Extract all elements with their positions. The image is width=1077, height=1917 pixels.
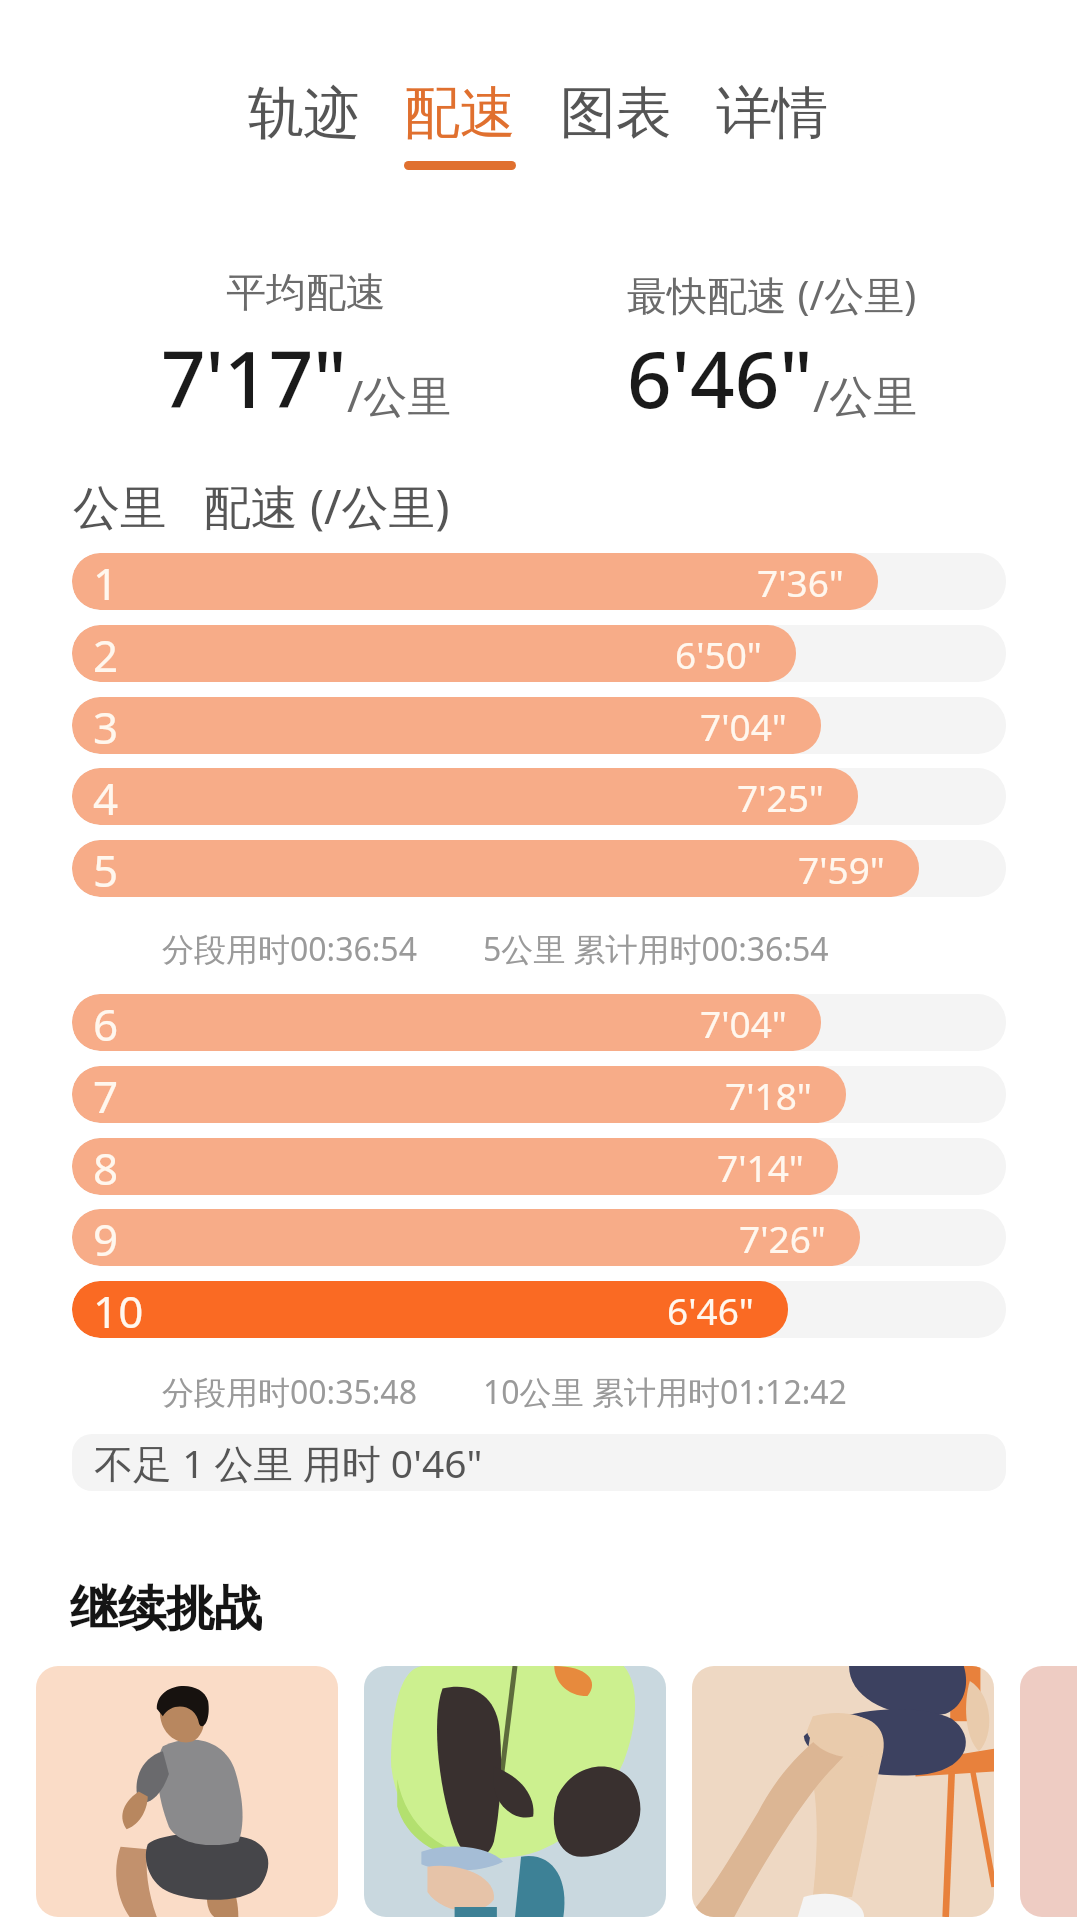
staticText: 3 bbox=[93, 697, 119, 754]
staticText: 7'04" bbox=[700, 998, 787, 1048]
staticText: 6'46" bbox=[627, 325, 813, 431]
button[interactable]: 图表 bbox=[538, 78, 694, 161]
staticText: 7'14" bbox=[717, 1142, 804, 1192]
staticText: 2 bbox=[93, 625, 119, 682]
staticText: 5公里 累计用时00:36:54 bbox=[483, 927, 829, 971]
button[interactable]: 10 bbox=[72, 1281, 1006, 1338]
staticText: 10公里 累计用时01:12:42 bbox=[483, 1370, 847, 1414]
staticText: /公里 bbox=[347, 365, 452, 425]
button[interactable]: 拉伸训练 bbox=[364, 1666, 666, 1917]
staticText: 公里 配速 (/公里) bbox=[73, 474, 450, 538]
button[interactable]: 5 bbox=[72, 840, 1006, 897]
staticText: 6'46" bbox=[667, 1285, 754, 1335]
staticText: 6'50" bbox=[675, 629, 762, 679]
staticText: 6 bbox=[93, 994, 119, 1051]
staticText: 7 bbox=[93, 1066, 119, 1123]
staticText: 轨迹 bbox=[248, 78, 360, 149]
button[interactable]: 详情 bbox=[694, 78, 850, 161]
staticText: 不足 1 公里 用时 0'46" bbox=[94, 1436, 483, 1489]
button[interactable]: 深蹲训练 bbox=[36, 1666, 338, 1917]
staticText: 最快配速 (/公里) bbox=[627, 267, 917, 322]
button[interactable]: 配速 bbox=[382, 78, 538, 170]
button[interactable]: 4 bbox=[72, 768, 1006, 825]
button[interactable]: 不足 1 公里 用时 0'46" bbox=[72, 1434, 1006, 1491]
staticText: 8 bbox=[93, 1138, 119, 1195]
staticText: 7'04" bbox=[700, 701, 787, 751]
staticText: 7'18" bbox=[725, 1070, 812, 1120]
button[interactable]: 1 bbox=[72, 553, 1006, 610]
button[interactable]: 3 bbox=[72, 697, 1006, 754]
staticText: 10 bbox=[93, 1281, 144, 1338]
staticText: 4 bbox=[93, 768, 119, 825]
button[interactable]: 9 bbox=[72, 1209, 1006, 1266]
staticText: 图表 bbox=[560, 78, 672, 149]
staticText: 1 bbox=[93, 553, 119, 610]
staticText: 9 bbox=[93, 1209, 119, 1266]
staticText: 分段用时00:35:48 bbox=[162, 1370, 417, 1414]
staticText: 7'25" bbox=[737, 772, 824, 822]
staticText: 7'36" bbox=[757, 557, 844, 607]
button[interactable]: 轨迹 bbox=[226, 78, 382, 161]
staticText: 平均配速 bbox=[226, 267, 386, 317]
button[interactable]: 更多训练 bbox=[1020, 1666, 1077, 1917]
staticText: 7'59" bbox=[798, 844, 885, 894]
staticText: 7'26" bbox=[739, 1213, 826, 1263]
staticText: 5 bbox=[93, 840, 119, 897]
button[interactable]: 8 bbox=[72, 1138, 1006, 1195]
staticText: /公里 bbox=[813, 365, 918, 425]
button[interactable]: 7 bbox=[72, 1066, 1006, 1123]
staticText: 继续挑战 bbox=[70, 1579, 262, 1639]
button[interactable]: 2 bbox=[72, 625, 1006, 682]
staticText: 7'17" bbox=[161, 325, 347, 431]
staticText: 详情 bbox=[716, 78, 828, 149]
staticText: 分段用时00:36:54 bbox=[162, 927, 417, 971]
button[interactable]: 腿部训练 bbox=[692, 1666, 994, 1917]
button[interactable]: 6 bbox=[72, 994, 1006, 1051]
staticText: 配速 bbox=[404, 78, 516, 149]
